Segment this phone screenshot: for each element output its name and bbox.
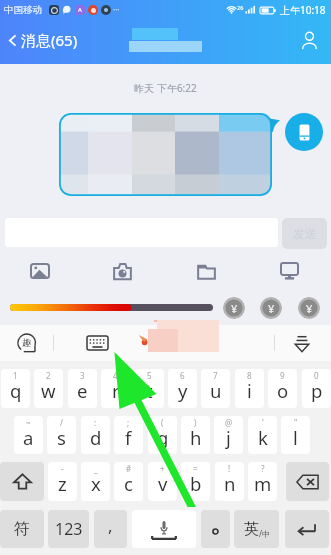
staticText: z: [58, 471, 67, 496]
button[interactable]: Avatar: [285, 113, 323, 151]
staticText: w: [41, 378, 56, 403]
staticText: 26: [237, 4, 244, 11]
button[interactable]: Image: [25, 255, 55, 287]
staticText: 1: [13, 370, 18, 381]
button[interactable]: Coin: [260, 297, 282, 319]
button[interactable]: Coin: [298, 297, 320, 319]
staticText: d: [90, 425, 102, 450]
button[interactable]: _: [81, 462, 110, 501]
button[interactable]: ,: [94, 510, 127, 548]
staticText: 4: [113, 370, 118, 381]
staticText: v: [158, 471, 168, 496]
button[interactable]: ): [181, 416, 210, 454]
button[interactable]: Backspace: [286, 462, 329, 501]
staticText: 发送: [293, 226, 317, 241]
staticText: 0: [314, 370, 319, 381]
button[interactable]: ': [248, 416, 277, 454]
staticText: f: [125, 425, 132, 450]
button[interactable]: Screen: [274, 255, 304, 287]
staticText: ': [262, 417, 264, 428]
button[interactable]: Enter: [285, 510, 329, 548]
staticText: q: [10, 378, 22, 403]
button[interactable]: [59, 113, 272, 196]
button[interactable]: Camera: [107, 255, 137, 287]
staticText: :: [94, 417, 97, 428]
staticText: !: [228, 463, 231, 474]
staticText: ): [194, 417, 197, 428]
staticText: 消息(65): [21, 30, 78, 50]
button[interactable]: 123: [48, 510, 89, 548]
button[interactable]: ": [281, 416, 310, 454]
button[interactable]: -: [48, 462, 77, 501]
button[interactable]: #: [114, 462, 143, 501]
staticText: /中: [259, 528, 270, 539]
button[interactable]: Contacts: [287, 19, 331, 61]
button[interactable]: 6: [168, 369, 197, 408]
button[interactable]: ~: [14, 416, 43, 454]
staticText: ¥: [268, 301, 275, 316]
staticText: ?: [261, 463, 265, 474]
button[interactable]: Voice input: [132, 510, 196, 548]
button[interactable]: (: [148, 416, 177, 454]
staticText: ,: [108, 514, 113, 537]
staticText: ": [294, 417, 298, 428]
button[interactable]: 发送: [282, 218, 327, 249]
button[interactable]: Coin: [223, 297, 245, 319]
button[interactable]: Stickers: [6, 325, 48, 361]
staticText: k: [258, 425, 268, 450]
button[interactable]: =: [181, 462, 210, 501]
button[interactable]: 1: [1, 369, 30, 408]
button[interactable]: 2: [34, 369, 63, 408]
staticText: i: [247, 378, 252, 403]
staticText: t: [146, 378, 153, 403]
staticText: p: [311, 378, 323, 403]
button[interactable]: 7: [201, 369, 230, 408]
button[interactable]: +: [148, 462, 177, 501]
button[interactable]: 3: [68, 369, 97, 408]
staticText: 趣: [22, 337, 32, 349]
staticText: @: [225, 417, 233, 428]
button[interactable]: 5: [135, 369, 164, 408]
staticText: +: [160, 463, 165, 474]
staticText: 7: [213, 370, 218, 381]
staticText: 5: [147, 370, 152, 381]
staticText: ~: [26, 417, 31, 428]
staticText: 8: [247, 370, 252, 381]
button[interactable]: Folder: [191, 255, 221, 287]
staticText: #: [126, 463, 132, 474]
staticText: ;: [127, 417, 130, 428]
staticText: 英: [244, 520, 259, 539]
button[interactable]: [201, 510, 230, 548]
button[interactable]: 0: [302, 369, 331, 408]
staticText: ···: [113, 4, 120, 15]
button[interactable]: 4: [101, 369, 130, 408]
staticText: ¥: [306, 301, 313, 316]
button[interactable]: @: [214, 416, 243, 454]
staticText: a: [23, 425, 34, 450]
staticText: x: [91, 471, 101, 496]
button[interactable]: Keyboard: [76, 325, 119, 361]
staticText: b: [190, 471, 202, 496]
button[interactable]: Shift: [0, 462, 44, 501]
staticText: l: [293, 425, 298, 450]
staticText: /: [60, 417, 63, 428]
staticText: =: [193, 463, 198, 474]
button[interactable]: 符: [0, 510, 44, 548]
staticText: (: [161, 417, 164, 428]
button[interactable]: ;: [114, 416, 143, 454]
staticText: m: [254, 471, 272, 496]
button[interactable]: !: [215, 462, 244, 501]
button[interactable]: :: [81, 416, 110, 454]
button[interactable]: 8: [235, 369, 264, 408]
staticText: e: [77, 378, 88, 403]
button[interactable]: Language switch: [234, 510, 279, 548]
button[interactable]: Hide keyboard: [286, 325, 318, 361]
button[interactable]: 9: [268, 369, 297, 408]
staticText: s: [57, 425, 66, 450]
staticText: j: [226, 425, 231, 450]
button[interactable]: 消息(65): [0, 19, 86, 61]
button[interactable]: /: [47, 416, 76, 454]
button[interactable]: ?: [248, 462, 277, 501]
staticText: o: [277, 378, 289, 403]
